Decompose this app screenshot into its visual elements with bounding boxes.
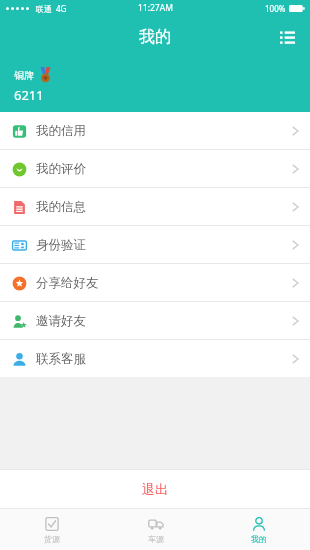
button[interactable]: 我的 — [207, 509, 310, 550]
button[interactable]: 我的评价 — [0, 150, 310, 187]
button[interactable]: 分享给好友 — [0, 264, 310, 301]
staticText: 我的 — [139, 27, 171, 47]
staticText: 100% — [265, 3, 286, 14]
button[interactable]: 联系客服 — [0, 340, 310, 377]
button[interactable]: 我的信息 — [0, 188, 310, 225]
staticText: 联系客服 — [36, 351, 86, 367]
staticText: 联通 — [36, 4, 52, 14]
staticText: 4G — [56, 3, 67, 14]
button[interactable]: 货源 — [0, 509, 104, 550]
staticText: 身份验证 — [36, 237, 86, 253]
button[interactable]: Menu — [272, 22, 302, 52]
staticText: 我的 — [251, 534, 267, 544]
button[interactable]: 退出 — [0, 470, 310, 508]
staticText: 6211 — [14, 86, 44, 104]
button[interactable]: 我的信用 — [0, 112, 310, 149]
button[interactable]: 邀请好友 — [0, 302, 310, 339]
staticText: 我的信用 — [36, 123, 86, 139]
staticText: 我的评价 — [36, 161, 86, 177]
staticText: 邀请好友 — [36, 313, 86, 329]
staticText: 我的信息 — [36, 199, 86, 215]
staticText: 分享给好友 — [36, 275, 99, 291]
button[interactable]: 车源 — [104, 509, 207, 550]
staticText: 11:27AM — [138, 2, 173, 14]
staticText: 车源 — [148, 534, 164, 544]
staticText: 退出 — [142, 481, 168, 497]
button[interactable]: 身份验证 — [0, 226, 310, 263]
staticText: 铜牌 — [14, 69, 34, 82]
staticText: 货源 — [44, 534, 60, 544]
